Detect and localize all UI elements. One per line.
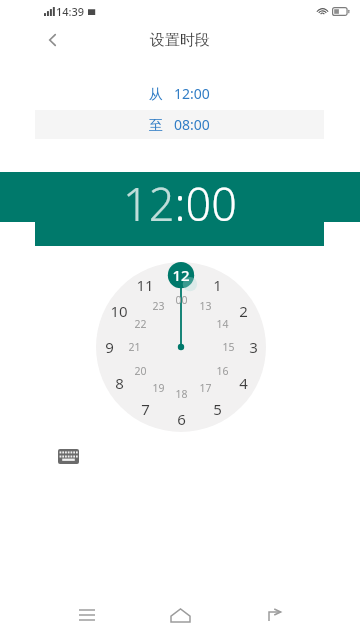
staticText: 从 12:00 (149, 84, 210, 103)
staticText: 12:00 (123, 173, 237, 234)
staticText: 6 (177, 409, 186, 429)
staticText: 18 (175, 387, 188, 401)
staticText: 11 (136, 275, 154, 295)
staticText: 10 (110, 301, 128, 321)
staticText: 5 (213, 399, 222, 419)
staticText: 2 (239, 301, 248, 321)
staticText: 14:39 (56, 4, 85, 19)
staticText: 16 (216, 364, 229, 378)
staticText: 12 (172, 265, 190, 285)
staticText: 4 (239, 373, 248, 393)
staticText: 23 (152, 299, 165, 313)
staticText: 19 (152, 381, 165, 395)
staticText: 9 (105, 337, 114, 357)
button[interactable]: Home (158, 596, 202, 634)
staticText: 17 (199, 381, 212, 395)
button[interactable]: 至 08:00 (35, 110, 324, 139)
staticText: 至 08:00 (149, 115, 210, 134)
button[interactable]: Recent apps (65, 596, 109, 634)
staticText: 20 (134, 364, 147, 378)
staticText: 设置时段 (150, 31, 210, 50)
staticText: 00 (175, 293, 188, 307)
staticText: 14 (216, 317, 229, 331)
staticText: 7 (141, 399, 150, 419)
staticText: 1 (213, 275, 222, 295)
staticText: 21 (128, 340, 141, 354)
staticText: 13 (199, 299, 212, 313)
button[interactable]: 从 12:00 (35, 77, 324, 109)
staticText: 8 (115, 373, 124, 393)
staticText: 15 (222, 340, 235, 354)
button[interactable]: Switch to text input (50, 441, 86, 471)
staticText: 22 (134, 317, 147, 331)
staticText: 3 (249, 337, 258, 357)
button[interactable]: Back (251, 596, 295, 634)
button[interactable]: Hour picker clock (96, 262, 266, 432)
button[interactable]: Back (39, 26, 67, 54)
